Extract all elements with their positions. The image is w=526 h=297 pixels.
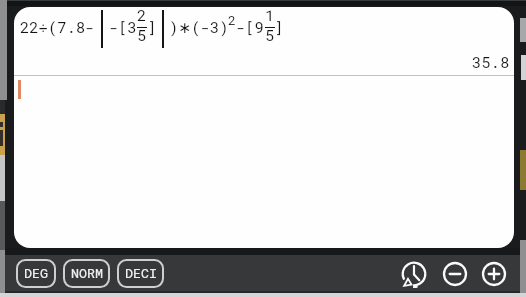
staticText: -[3 <box>109 17 137 37</box>
button[interactable]: NORM <box>63 259 110 288</box>
button[interactable] <box>443 262 467 286</box>
staticText: )∗(-3) <box>169 17 229 37</box>
staticText: DEG <box>24 264 48 282</box>
staticText: -[9 <box>236 17 264 37</box>
staticText: ] <box>147 17 157 37</box>
staticText: DECI <box>125 264 157 282</box>
button[interactable] <box>482 262 506 286</box>
staticText: NORM <box>71 264 103 282</box>
staticText: 2 <box>228 11 236 28</box>
button[interactable]: DEG <box>16 259 56 288</box>
staticText: 22÷(7.8- <box>20 17 95 37</box>
staticText: ] <box>274 17 284 37</box>
staticText: 5 <box>137 25 147 45</box>
staticText: 1 <box>265 5 275 25</box>
button[interactable] <box>401 261 427 287</box>
staticText: 35.8 <box>472 52 510 72</box>
staticText: 2 <box>137 5 147 25</box>
button[interactable]: DECI <box>117 259 164 288</box>
staticText: 5 <box>265 25 275 45</box>
